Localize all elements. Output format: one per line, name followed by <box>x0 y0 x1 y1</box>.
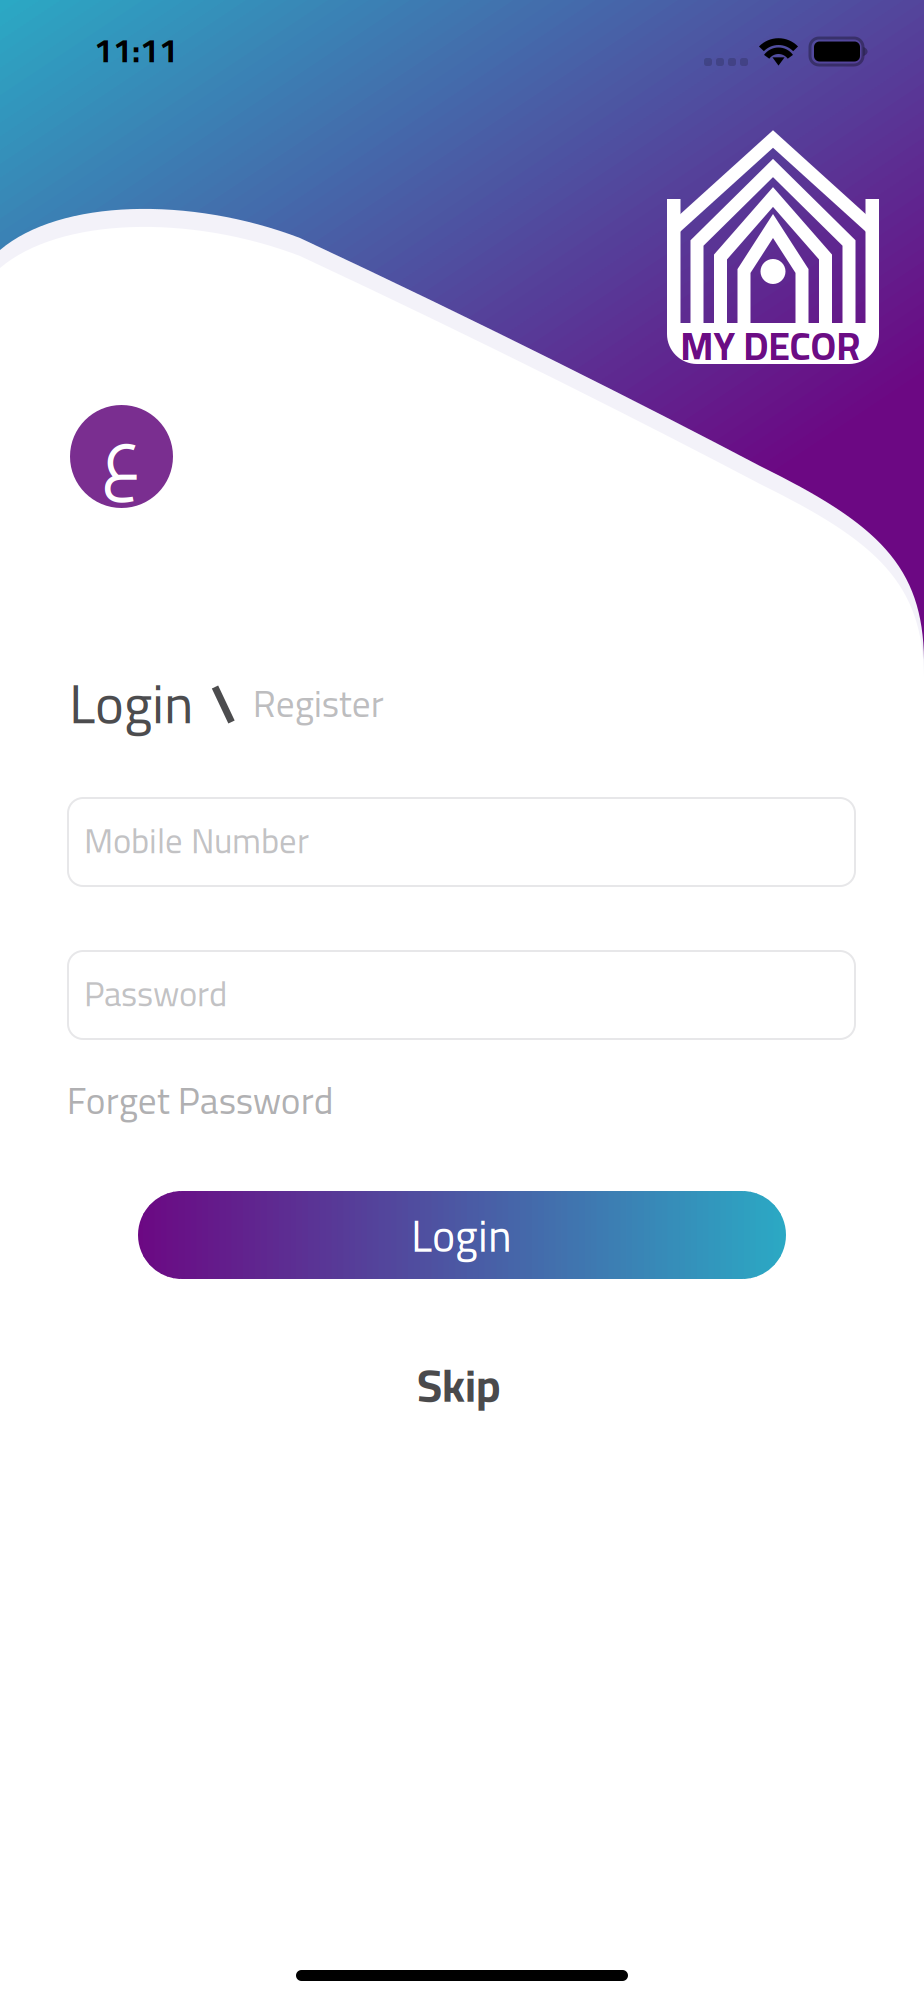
button[interactable]: Forget Password <box>65 1081 341 1131</box>
staticText: ع <box>101 386 141 521</box>
button[interactable]: Mobile Number <box>68 798 855 886</box>
staticText: Register <box>253 668 384 738</box>
button[interactable]: Register <box>251 684 391 734</box>
staticText: Password <box>84 961 227 1026</box>
button[interactable]: Login <box>69 677 199 739</box>
staticText: Login <box>411 1194 512 1277</box>
button[interactable]: Login <box>138 1191 786 1279</box>
staticText: Skip <box>417 1343 501 1428</box>
staticText: Forget Password <box>67 1065 334 1135</box>
staticText: Login <box>69 652 193 754</box>
staticText: MY DECOR <box>680 310 860 382</box>
staticText: Mobile Number <box>84 808 309 873</box>
button[interactable]: Switch language to Arabic <box>70 405 173 508</box>
button[interactable]: Skip <box>416 1362 508 1418</box>
button[interactable]: Password <box>68 951 855 1039</box>
staticText: 11:11 <box>94 19 178 81</box>
